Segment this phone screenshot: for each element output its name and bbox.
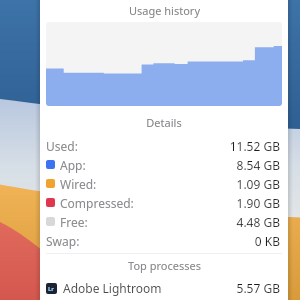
staticText: Wired: [60, 176, 97, 192]
staticText: Swap: [46, 233, 80, 249]
button[interactable]: Wired: [40, 174, 288, 193]
staticText: 5.57 GB [236, 280, 280, 296]
staticText: Free: [60, 214, 88, 230]
staticText: 0 KB [254, 233, 280, 249]
button[interactable]: Used: [40, 136, 288, 155]
button[interactable]: App: [40, 155, 288, 174]
staticText: 11.52 GB [229, 138, 280, 154]
button[interactable]: Free: [40, 212, 288, 231]
staticText: App: [60, 157, 86, 173]
staticText: Top processes [128, 258, 201, 273]
staticText: 8.54 GB [236, 157, 280, 173]
staticText: Lr [48, 285, 55, 293]
staticText: Usage history [129, 3, 200, 18]
button[interactable]: Swap: [40, 231, 288, 250]
button[interactable]: Memory usage history chart [46, 22, 282, 106]
staticText: Details [146, 115, 182, 130]
staticText: Compressed: [60, 195, 134, 211]
button[interactable]: Compressed: [40, 193, 288, 212]
staticText: 1.09 GB [236, 176, 280, 192]
button[interactable]: Lr [40, 278, 288, 298]
staticText: Adobe Lightroom [63, 280, 162, 296]
staticText: 4.48 GB [236, 214, 280, 230]
staticText: 1.90 GB [236, 195, 280, 211]
staticText: Used: [46, 138, 78, 154]
